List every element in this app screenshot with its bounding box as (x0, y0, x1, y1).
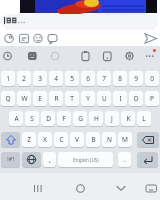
button[interactable]: 4 (49, 71, 63, 86)
button[interactable] (142, 178, 159, 198)
button[interactable]: English (US) (58, 152, 113, 167)
button[interactable] (79, 50, 91, 62)
staticText: . (124, 155, 126, 165)
staticText: K (126, 114, 131, 123)
button[interactable] (101, 50, 113, 62)
staticText: 5 (70, 74, 74, 83)
button[interactable] (32, 31, 45, 44)
button[interactable]: D (41, 111, 55, 126)
button[interactable]: 6 (81, 71, 95, 86)
staticText: H (94, 114, 99, 123)
staticText: B (91, 135, 96, 144)
button[interactable] (2, 50, 14, 62)
button[interactable]: S (25, 111, 39, 126)
button[interactable]: M (118, 132, 132, 147)
button[interactable]: H (89, 111, 103, 126)
staticText: C (59, 135, 64, 144)
button[interactable]: . (118, 152, 131, 167)
staticText: 3 (38, 74, 42, 83)
staticText: M (122, 135, 128, 144)
button[interactable]: K (121, 111, 135, 126)
staticText: English (US) (73, 157, 99, 163)
staticText: O (133, 94, 139, 103)
button[interactable]: 2 (17, 71, 31, 86)
button[interactable]: Y (81, 91, 95, 106)
staticText: F (62, 114, 66, 123)
button[interactable] (22, 152, 41, 167)
button[interactable] (123, 50, 136, 62)
staticText: V (75, 135, 79, 144)
staticText: , (49, 155, 51, 165)
button[interactable]: , (43, 152, 56, 167)
button[interactable]: 5 (65, 71, 79, 86)
button[interactable] (49, 50, 61, 62)
button[interactable]: !#1 (1, 152, 20, 167)
staticText: U (102, 94, 107, 103)
button[interactable] (143, 50, 156, 62)
staticText: A (14, 114, 19, 123)
staticText: 8 (118, 74, 122, 83)
staticText: 9 (134, 74, 138, 83)
staticText: 2 (22, 74, 26, 83)
staticText: S (30, 114, 34, 123)
button[interactable]: B (86, 132, 100, 147)
button[interactable]: L (137, 111, 151, 126)
button[interactable]: I (113, 91, 127, 106)
button[interactable]: 9 (129, 71, 143, 86)
button[interactable]: X (38, 132, 52, 147)
button[interactable]: P (145, 91, 159, 106)
button[interactable]: F (57, 111, 71, 126)
staticText: E (38, 94, 42, 103)
button[interactable] (3, 31, 15, 44)
button[interactable] (110, 178, 132, 198)
staticText: D (46, 114, 51, 123)
staticText: 6 (86, 74, 90, 83)
staticText: I (119, 94, 122, 103)
button[interactable]: C (54, 132, 68, 147)
button[interactable]: Q (1, 91, 15, 106)
button[interactable] (2, 14, 158, 30)
button[interactable]: 3 (33, 71, 47, 86)
staticText: J (111, 114, 113, 123)
staticText: 4 (54, 74, 58, 83)
button[interactable]: 0 (145, 71, 159, 86)
button[interactable] (1, 132, 20, 147)
button[interactable]: A (9, 111, 23, 126)
button[interactable]: G (73, 111, 87, 126)
button[interactable] (26, 178, 48, 198)
button[interactable] (137, 152, 158, 167)
button[interactable]: 1 (1, 71, 15, 86)
button[interactable] (142, 30, 159, 45)
staticText: P (150, 94, 154, 103)
button[interactable] (137, 132, 159, 147)
staticText: 1 (6, 74, 10, 83)
button[interactable]: W (17, 91, 31, 106)
staticText: X (43, 135, 47, 144)
button[interactable]: R (49, 91, 63, 106)
staticText: T (70, 94, 74, 103)
button[interactable]: Z (22, 132, 36, 147)
staticText: R (54, 94, 59, 103)
button[interactable] (18, 31, 30, 44)
staticText: 0 (150, 74, 154, 83)
staticText: 7 (102, 74, 106, 83)
staticText: L (142, 114, 146, 123)
staticText: G (78, 114, 83, 123)
staticText: Y (86, 94, 90, 103)
button[interactable] (26, 50, 38, 62)
button[interactable]: 8 (113, 71, 127, 86)
button[interactable]: J (105, 111, 119, 126)
button[interactable]: 7 (97, 71, 111, 86)
button[interactable]: N (102, 132, 116, 147)
staticText: W (21, 94, 28, 103)
staticText: N (107, 135, 112, 144)
staticText: Z (27, 135, 31, 144)
button[interactable]: O (129, 91, 143, 106)
button[interactable] (69, 178, 91, 198)
button[interactable]: U (97, 91, 111, 106)
button[interactable]: V (70, 132, 84, 147)
button[interactable] (46, 31, 59, 44)
button[interactable]: T (65, 91, 79, 106)
staticText: !#1 (7, 156, 15, 163)
button[interactable]: E (33, 91, 47, 106)
